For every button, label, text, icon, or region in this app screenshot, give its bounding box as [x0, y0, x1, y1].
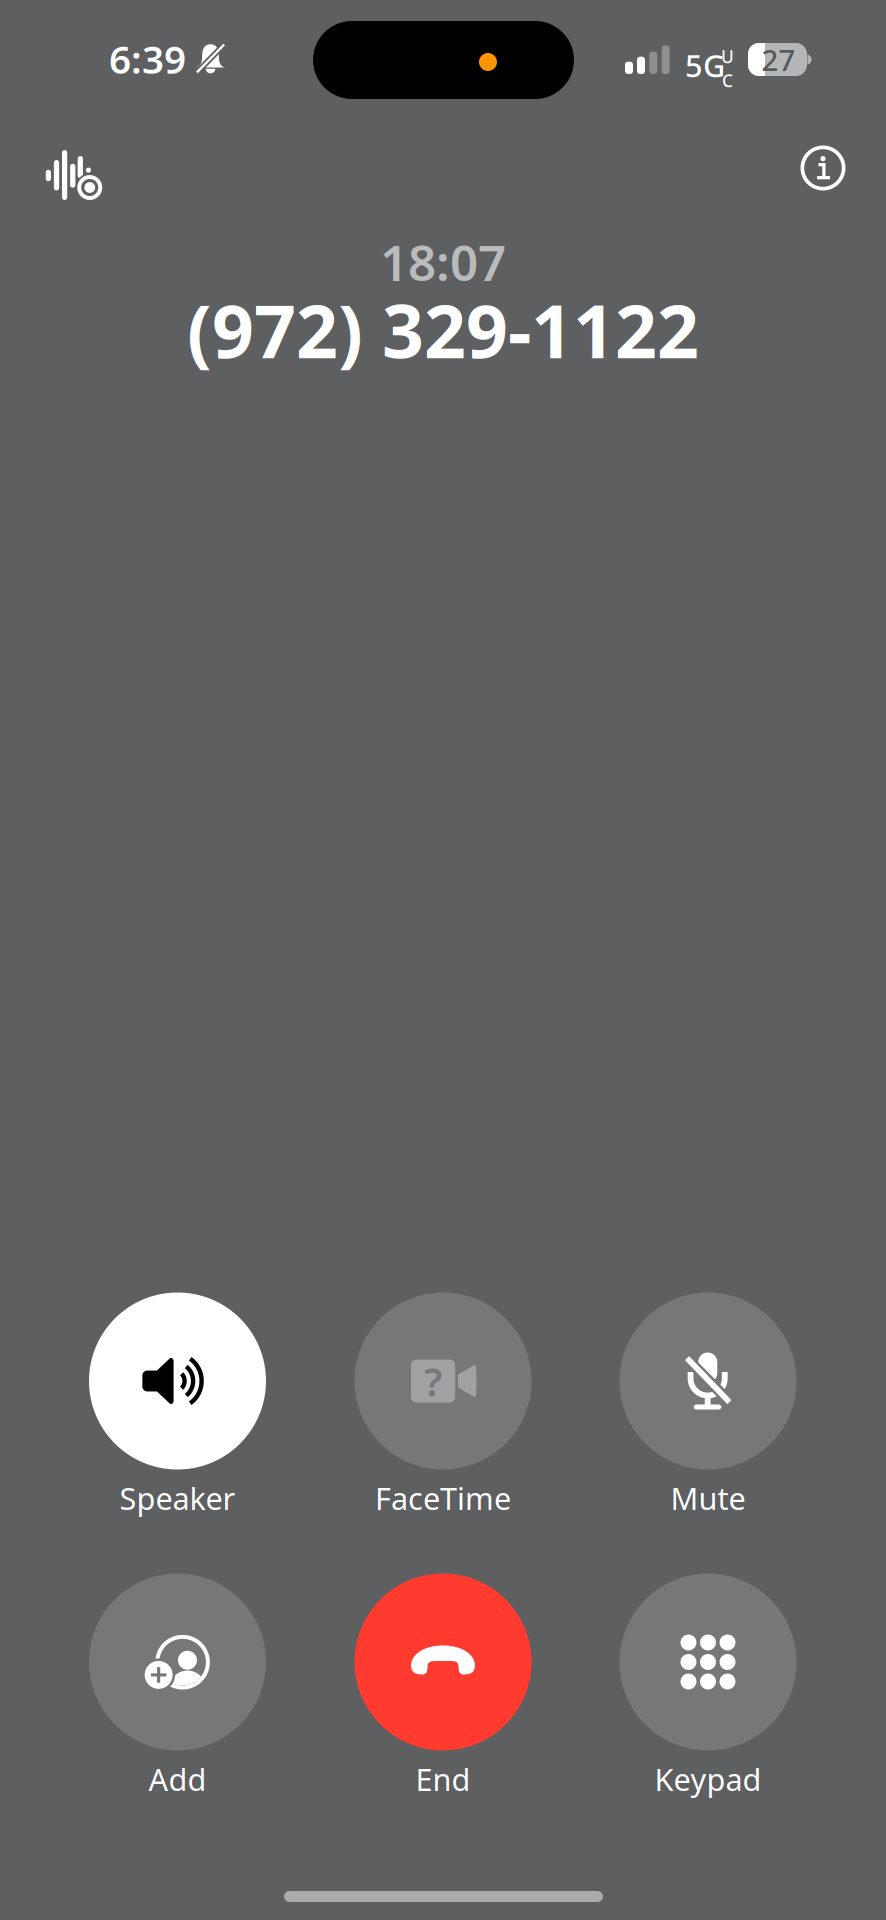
button[interactable]: Speaker: [57, 1292, 297, 1518]
staticText: Add: [148, 1759, 206, 1799]
button[interactable]: End: [323, 1573, 563, 1799]
staticText: Speaker: [119, 1478, 235, 1518]
button[interactable]: Add: [57, 1573, 297, 1799]
button[interactable]: Call recording: [12, 127, 108, 223]
staticText: 27: [761, 40, 795, 79]
staticText: FaceTime: [375, 1478, 511, 1518]
staticText: 6:39: [109, 33, 186, 84]
button[interactable]: Mute: [588, 1292, 828, 1518]
staticText: 5G: [685, 45, 725, 86]
staticText: Mute: [670, 1478, 745, 1518]
button[interactable]: Keypad: [588, 1573, 828, 1799]
staticText: (972) 329-1122: [187, 281, 699, 378]
staticText: U: [721, 45, 734, 68]
staticText: Keypad: [654, 1759, 761, 1799]
staticText: C: [722, 69, 733, 92]
button[interactable]: Call details: [775, 120, 871, 216]
staticText: End: [415, 1759, 470, 1799]
staticText: ?: [424, 1354, 442, 1407]
staticText: 18:07: [380, 229, 506, 294]
button[interactable]: ?: [323, 1292, 563, 1518]
